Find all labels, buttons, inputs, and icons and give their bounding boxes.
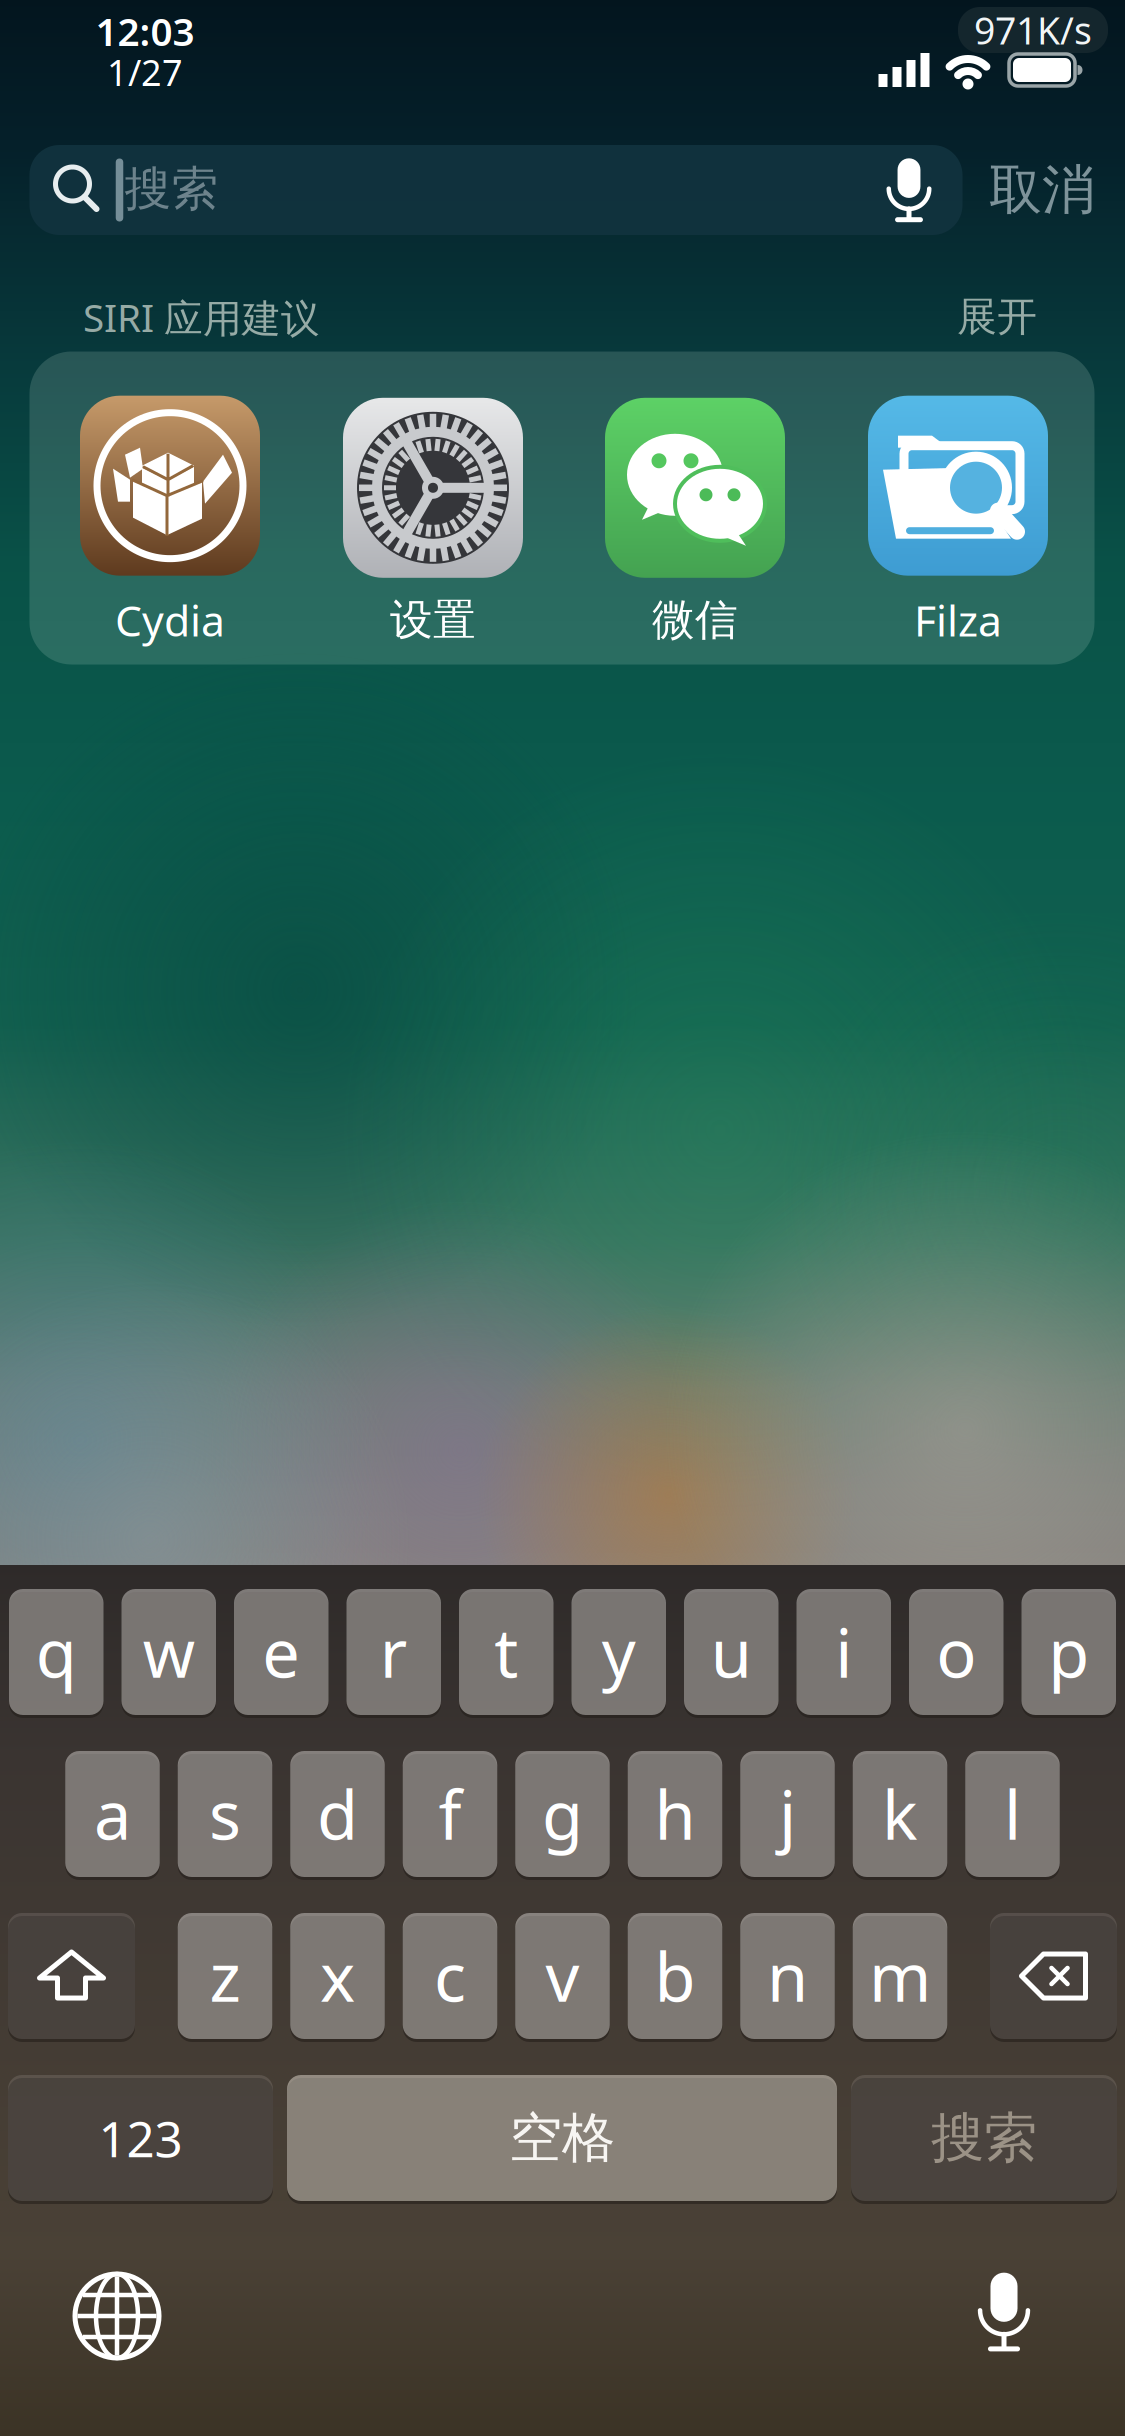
staticText: 微信 <box>652 594 738 646</box>
staticText: 971K/s <box>974 5 1092 55</box>
staticText: v <box>545 1932 579 2020</box>
staticText: Cydia <box>115 592 225 648</box>
button[interactable]: 听写 <box>887 157 931 223</box>
button[interactable]: 空格 <box>287 2075 837 2201</box>
button[interactable]: l <box>965 1751 1060 1877</box>
button[interactable]: j <box>740 1751 835 1877</box>
button[interactable]: c <box>403 1913 497 2039</box>
button[interactable]: f <box>403 1751 497 1877</box>
staticText: r <box>380 1608 408 1696</box>
staticText: h <box>654 1770 695 1858</box>
button[interactable]: 123 <box>8 2075 273 2201</box>
staticText: 空格 <box>509 2105 615 2171</box>
button[interactable]: n <box>740 1913 835 2039</box>
staticText: 1/27 <box>107 48 183 96</box>
staticText: 取消 <box>989 157 1095 223</box>
button[interactable]: q <box>9 1589 103 1715</box>
staticText: d <box>317 1770 358 1858</box>
button[interactable]: Filza <box>868 396 1048 648</box>
staticText: a <box>94 1770 131 1858</box>
button[interactable]: 搜索 <box>29 145 962 235</box>
staticText: 123 <box>98 2105 182 2171</box>
staticText: i <box>835 1608 852 1696</box>
button[interactable]: m <box>853 1913 947 2039</box>
staticText: x <box>320 1932 355 2020</box>
staticText: 搜索 <box>124 160 218 218</box>
button[interactable]: e <box>234 1589 328 1715</box>
staticText: k <box>882 1770 918 1858</box>
staticText: s <box>209 1770 241 1858</box>
button[interactable]: Shift <box>8 1913 135 2039</box>
staticText: e <box>262 1608 300 1696</box>
staticText: u <box>711 1608 752 1696</box>
staticText: 12:03 <box>95 5 194 57</box>
button[interactable]: 微信 <box>605 398 785 646</box>
button[interactable]: y <box>571 1589 666 1715</box>
staticText: g <box>542 1770 583 1858</box>
staticText: q <box>36 1608 77 1696</box>
button[interactable]: p <box>1021 1589 1116 1715</box>
staticText: l <box>1004 1770 1021 1858</box>
button[interactable]: o <box>909 1589 1003 1715</box>
staticText: 展开 <box>957 292 1037 341</box>
button[interactable]: a <box>65 1751 160 1877</box>
button[interactable]: 设置 <box>343 398 523 646</box>
button[interactable]: g <box>515 1751 610 1877</box>
staticText: t <box>494 1608 518 1696</box>
staticText: p <box>1048 1608 1089 1696</box>
button[interactable]: r <box>346 1589 441 1715</box>
button[interactable]: 搜索 <box>851 2075 1117 2201</box>
button[interactable]: b <box>628 1913 722 2039</box>
staticText: w <box>143 1608 195 1696</box>
button[interactable]: Delete <box>990 1913 1117 2039</box>
button[interactable]: 下一个键盘 <box>75 2274 159 2358</box>
button[interactable]: s <box>178 1751 272 1877</box>
button[interactable]: Cydia <box>80 396 260 648</box>
button[interactable]: z <box>178 1913 272 2039</box>
staticText: m <box>869 1932 931 2020</box>
button[interactable]: d <box>290 1751 385 1877</box>
button[interactable]: i <box>796 1589 891 1715</box>
staticText: o <box>936 1608 976 1696</box>
button[interactable]: u <box>684 1589 778 1715</box>
button[interactable]: t <box>459 1589 553 1715</box>
button[interactable]: x <box>290 1913 385 2039</box>
staticText: SIRI 应用建议 <box>83 291 320 343</box>
staticText: f <box>438 1770 461 1858</box>
button[interactable]: h <box>628 1751 722 1877</box>
button[interactable]: 取消 <box>989 157 1095 223</box>
staticText: y <box>602 1608 636 1696</box>
button[interactable]: v <box>515 1913 610 2039</box>
staticText: j <box>779 1770 796 1858</box>
button[interactable]: w <box>121 1589 216 1715</box>
button[interactable]: k <box>853 1751 947 1877</box>
staticText: 搜索 <box>931 2105 1037 2171</box>
staticText: Filza <box>914 592 1002 648</box>
button[interactable]: 展开 <box>957 292 1037 341</box>
staticText: c <box>434 1932 466 2020</box>
staticText: n <box>767 1932 808 2020</box>
staticText: z <box>209 1932 240 2020</box>
staticText: 设置 <box>390 594 476 646</box>
staticText: b <box>654 1932 695 2020</box>
button[interactable]: 听写 <box>978 2271 1030 2353</box>
